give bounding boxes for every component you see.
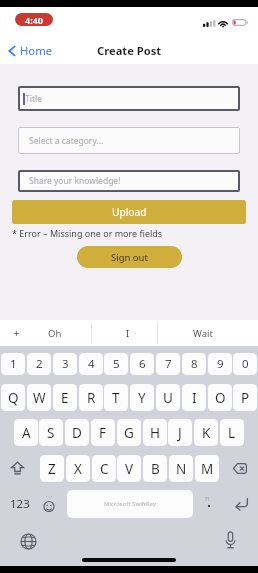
button[interactable]: ?!	[196, 490, 221, 518]
staticText: 123	[10, 496, 30, 512]
button[interactable]: Backspace	[228, 455, 252, 481]
button[interactable]: 4	[79, 353, 103, 375]
staticText: P	[241, 389, 250, 407]
staticText: +	[13, 325, 20, 341]
staticText: J	[178, 424, 182, 442]
button[interactable]: Change keyboard language	[15, 528, 41, 554]
staticText: 8	[191, 356, 198, 372]
button[interactable]: Voice input	[217, 527, 243, 553]
button[interactable]: H	[143, 419, 167, 446]
staticText: 4:40	[25, 14, 43, 26]
button[interactable]: O	[208, 384, 232, 411]
staticText: 0	[242, 356, 249, 372]
staticText: W	[33, 389, 46, 407]
staticText: 3	[62, 356, 69, 372]
staticText: V	[125, 460, 134, 478]
button[interactable]: Y	[130, 384, 154, 411]
button[interactable]: P	[233, 384, 257, 411]
button[interactable]: G	[117, 419, 141, 446]
staticText: F	[99, 424, 107, 442]
staticText: 7	[165, 356, 172, 372]
button[interactable]: D	[65, 419, 89, 446]
button[interactable]: Upload	[12, 200, 246, 224]
staticText: G	[124, 424, 134, 442]
button[interactable]: Microsoft SwiftKey	[67, 490, 193, 518]
button[interactable]: R	[79, 384, 103, 411]
staticText: T	[112, 389, 120, 407]
button[interactable]: 1	[1, 353, 25, 375]
button[interactable]: 9	[208, 353, 232, 375]
staticText: Select a category...	[29, 135, 104, 147]
staticText: ?!	[205, 495, 209, 502]
staticText: I	[126, 327, 130, 340]
button[interactable]: Emoji	[36, 490, 61, 518]
staticText: C	[100, 460, 109, 478]
button[interactable]: U	[156, 384, 180, 411]
staticText: 9	[217, 356, 224, 372]
button[interactable]: L	[220, 419, 244, 446]
staticText: 5	[113, 356, 120, 372]
staticText: B	[151, 460, 160, 478]
button[interactable]: W	[27, 384, 51, 411]
staticText: Title	[25, 93, 42, 105]
button[interactable]: M	[195, 455, 219, 482]
staticText: H	[150, 424, 161, 442]
button[interactable]: J	[168, 419, 192, 446]
button[interactable]: 2	[27, 353, 51, 375]
staticText: Share your knowledge!	[29, 175, 121, 187]
staticText: * Error – Missing one or more fields	[12, 227, 163, 239]
staticText: 6	[139, 356, 146, 372]
staticText: E	[61, 389, 69, 407]
button[interactable]: Title	[18, 86, 240, 111]
staticText: D	[72, 424, 82, 442]
button[interactable]: N	[169, 455, 193, 482]
button[interactable]: Sign out	[77, 246, 182, 268]
staticText: M	[201, 460, 214, 478]
button[interactable]: X	[66, 455, 90, 482]
button[interactable]: Return	[228, 490, 254, 518]
button[interactable]: Oh	[31, 320, 78, 346]
button[interactable]: 6	[130, 353, 154, 375]
staticText: O	[215, 389, 226, 407]
button[interactable]: 7	[156, 353, 180, 375]
button[interactable]: E	[53, 384, 77, 411]
button[interactable]: T	[104, 384, 128, 411]
staticText: Upload	[112, 205, 147, 219]
staticText: L	[228, 424, 236, 442]
button[interactable]: Share your knowledge!	[18, 170, 240, 192]
staticText: 1	[10, 356, 17, 372]
staticText: Create Post	[97, 43, 162, 58]
staticText: N	[176, 460, 187, 478]
staticText: 4	[88, 356, 95, 372]
staticText: Sign out	[111, 251, 148, 264]
button[interactable]: I	[114, 320, 142, 346]
staticText: Microsoft SwiftKey	[104, 500, 156, 508]
button[interactable]: 123	[4, 490, 36, 518]
button[interactable]: F	[91, 419, 115, 446]
button[interactable]: Shift	[6, 455, 28, 481]
staticText: 2	[36, 356, 43, 372]
button[interactable]: K	[194, 419, 218, 446]
staticText: A	[22, 424, 31, 442]
button[interactable]: Wait	[188, 320, 218, 346]
button[interactable]: Q	[1, 384, 25, 411]
button[interactable]: Z	[40, 455, 64, 482]
staticText: S	[47, 424, 55, 442]
button[interactable]: 0	[233, 353, 257, 375]
button[interactable]: Select a category...	[18, 127, 240, 154]
staticText: X	[74, 460, 82, 478]
staticText: Wait	[193, 327, 213, 340]
button[interactable]: Add	[2, 320, 31, 346]
button[interactable]: A	[14, 419, 38, 446]
button[interactable]: Home	[8, 43, 53, 58]
button[interactable]: 8	[182, 353, 206, 375]
button[interactable]: B	[143, 455, 167, 482]
button[interactable]: 5	[104, 353, 128, 375]
button[interactable]: I	[182, 384, 206, 411]
staticText: K	[202, 424, 211, 442]
button[interactable]: C	[92, 455, 116, 482]
button[interactable]: S	[39, 419, 63, 446]
staticText: Z	[48, 460, 56, 478]
button[interactable]: 3	[53, 353, 77, 375]
button[interactable]: V	[117, 455, 141, 482]
